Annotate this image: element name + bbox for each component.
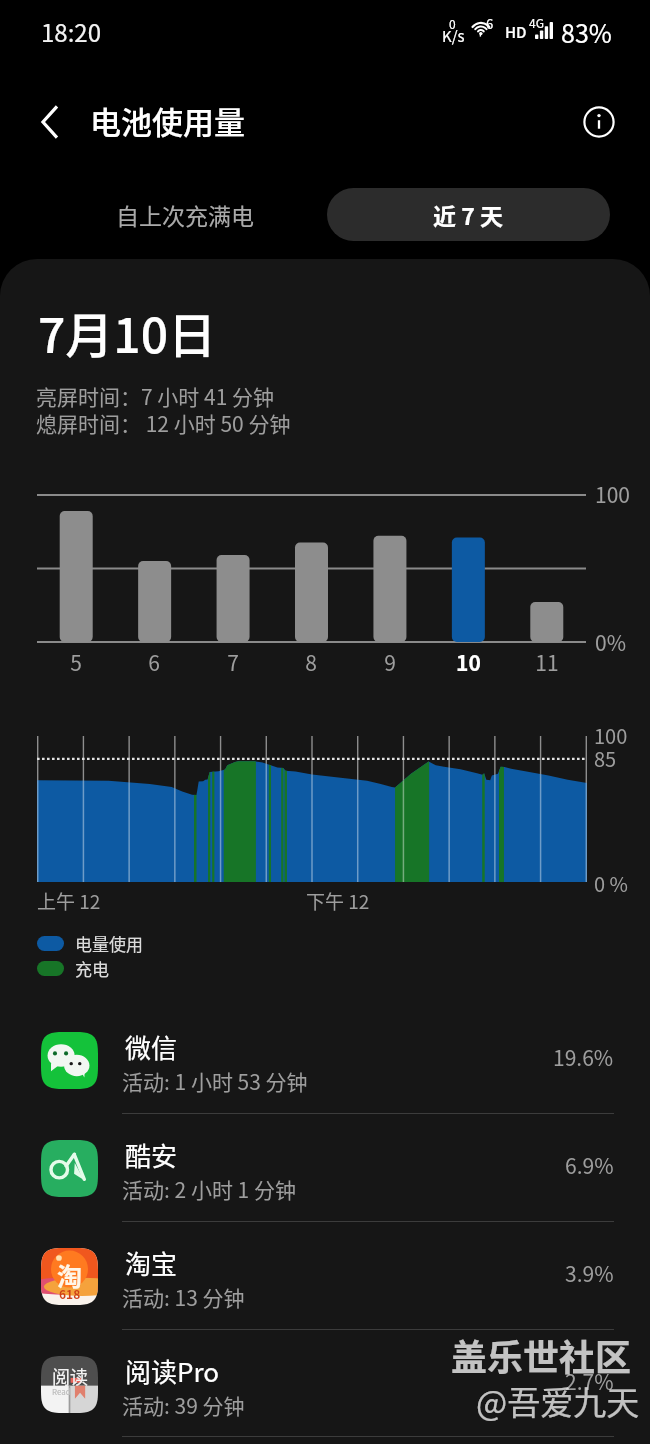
staticText: 自上次充满电 [116, 198, 254, 231]
staticText: 0 % [594, 869, 628, 898]
staticText: 充电 [75, 956, 109, 981]
staticText: 上午 12 [37, 887, 101, 915]
staticText: 7月10日 [38, 297, 217, 367]
staticText: 近 7 天 [433, 198, 504, 231]
button[interactable]: 近 7 天 [327, 188, 610, 241]
staticText: 19.6% [553, 1042, 614, 1072]
staticText: 2.7% [565, 1366, 614, 1396]
button[interactable]: 自上次充满电 [60, 188, 310, 241]
staticText: 熄屏时间： 12 小时 50 分钟 [36, 408, 291, 438]
staticText: 18:20 [41, 14, 101, 49]
staticText: 0 [449, 15, 456, 32]
staticText: 10 [456, 647, 481, 673]
button[interactable]: 微信 [0, 1006, 650, 1114]
staticText: 活动: 13 分钟 [122, 1282, 245, 1312]
button[interactable]: 酷安 [0, 1114, 650, 1222]
staticText: 6.9% [565, 1150, 614, 1180]
button[interactable]: Information [576, 99, 622, 145]
staticText: 83% [561, 14, 612, 50]
staticText: 6 [486, 14, 494, 33]
staticText: 酷安 [125, 1136, 178, 1174]
staticText: 8 [305, 647, 317, 673]
staticText: K/s [442, 25, 465, 47]
staticText: 淘 [57, 1257, 83, 1293]
staticText: 100 [595, 479, 630, 509]
staticText: 阅读Pro [125, 1352, 220, 1390]
staticText: 4G [529, 14, 544, 31]
staticText: Read [52, 1386, 71, 1398]
staticText: 微信 [125, 1028, 178, 1066]
staticText: 活动: 39 分钟 [122, 1390, 245, 1420]
staticText: 85 [594, 744, 617, 773]
button[interactable]: 阅读 [0, 1330, 650, 1438]
staticText: 6 [148, 647, 160, 673]
button[interactable]: Back [24, 98, 72, 146]
staticText: 阅读 [52, 1363, 88, 1389]
staticText: 活动: 1 小时 53 分钟 [122, 1066, 308, 1096]
staticText: 11 [535, 647, 559, 673]
staticText: 电量使用 [75, 931, 143, 956]
staticText: 活动: 2 小时 1 分钟 [122, 1174, 296, 1204]
staticText: 淘宝 [125, 1244, 178, 1282]
button[interactable]: 淘 [0, 1222, 650, 1330]
staticText: 9 [384, 647, 396, 673]
staticText: 下午 12 [306, 887, 370, 915]
staticText: 618 [59, 1285, 81, 1302]
staticText: 100 [594, 721, 628, 750]
staticText: HD [505, 21, 527, 43]
staticText: 亮屏时间：7 小时 41 分钟 [36, 381, 275, 411]
staticText: @吾爱九天 [476, 1377, 640, 1425]
staticText: 盖乐世社区 [451, 1329, 632, 1381]
staticText: 3.9% [565, 1258, 614, 1288]
staticText: 7 [227, 647, 239, 673]
staticText: 5 [70, 647, 82, 673]
staticText: 0% [595, 627, 626, 657]
staticText: 电池使用量 [90, 98, 245, 143]
